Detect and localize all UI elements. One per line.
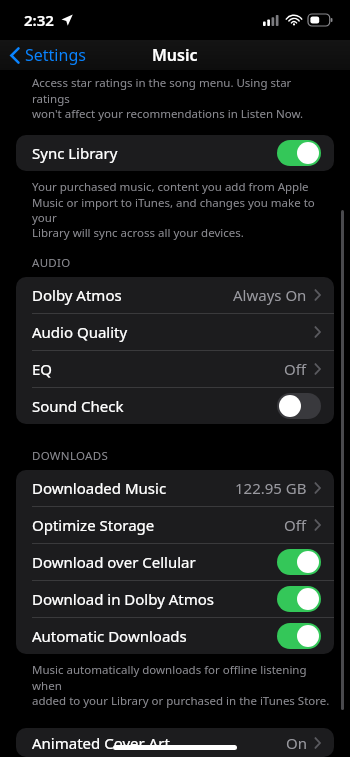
staticText: Optimize Storage — [32, 515, 155, 535]
button[interactable]: Sound Check — [16, 388, 334, 424]
staticText: AUDIO — [32, 255, 71, 271]
staticText: Sound Check — [32, 396, 124, 416]
button[interactable]: Dolby Atmos — [16, 277, 334, 313]
staticText: Downloaded Music — [32, 478, 167, 498]
button[interactable]: Automatic Downloads on — [277, 623, 321, 649]
button[interactable]: Audio Quality — [16, 314, 334, 350]
staticText: Access star ratings in the song menu. Us… — [32, 75, 332, 121]
button[interactable]: Download over Cellular on — [277, 549, 321, 575]
button[interactable]: Sound Check off — [277, 393, 321, 419]
staticText: Audio Quality — [32, 322, 128, 342]
staticText: Dolby Atmos — [32, 285, 122, 305]
staticText: Download in Dolby Atmos — [32, 589, 214, 609]
button[interactable]: Download in Dolby Atmos on — [277, 586, 321, 612]
staticText: Automatic Downloads — [32, 626, 187, 646]
staticText: Sync Library — [32, 143, 118, 163]
button[interactable]: Download over Cellular — [16, 544, 334, 580]
button[interactable]: Downloaded Music — [16, 470, 334, 506]
staticText: Download over Cellular — [32, 552, 196, 572]
staticText: Music automatically downloads for offlin… — [32, 662, 332, 708]
staticText: 122.95 GB — [235, 478, 307, 498]
button[interactable]: Sync Library — [16, 135, 334, 171]
button[interactable]: Download in Dolby Atmos — [16, 581, 334, 617]
staticText: EQ — [32, 359, 53, 379]
button[interactable]: Sync Library on — [277, 140, 321, 166]
staticText: Always On — [233, 285, 307, 305]
staticText: Off — [284, 515, 307, 535]
staticText: 2:32 — [24, 10, 54, 30]
button[interactable]: Automatic Downloads — [16, 618, 334, 654]
button[interactable]: Animated Cover Art — [16, 728, 334, 757]
button[interactable]: Settings — [0, 40, 96, 70]
staticText: DOWNLOADS — [32, 448, 109, 464]
staticText: Music — [152, 44, 198, 66]
staticText: Settings — [25, 44, 86, 66]
staticText: On — [286, 733, 307, 753]
staticText: Off — [284, 359, 307, 379]
button[interactable]: EQ — [16, 351, 334, 387]
staticText: Animated Cover Art — [32, 733, 170, 753]
staticText: Your purchased music, content you add fr… — [32, 179, 332, 240]
button[interactable]: Optimize Storage — [16, 507, 334, 543]
